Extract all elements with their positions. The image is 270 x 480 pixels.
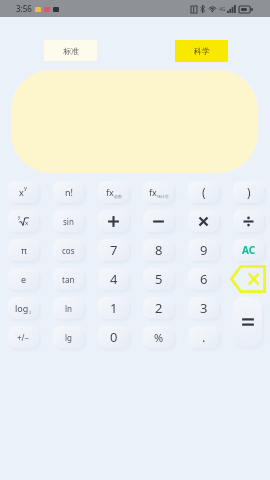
staticText: 4G xyxy=(219,6,226,13)
staticText: 5 xyxy=(155,270,163,288)
button[interactable] xyxy=(233,210,264,232)
staticText: 2 xyxy=(29,310,32,315)
staticText: ln xyxy=(65,303,73,314)
staticText: e xyxy=(21,273,27,285)
button[interactable]: 0 xyxy=(98,326,129,348)
staticText: 0 xyxy=(110,328,118,346)
staticText: 统计学 xyxy=(157,194,169,199)
staticText: sin xyxy=(63,216,74,227)
button[interactable]: fx xyxy=(98,181,129,203)
button[interactable]: ) xyxy=(233,181,264,203)
button[interactable]: n! xyxy=(53,181,84,203)
button[interactable]: y xyxy=(8,210,39,232)
button[interactable]: 7 xyxy=(98,239,129,261)
staticText: 9 xyxy=(200,241,208,259)
staticText: . xyxy=(202,328,206,346)
staticText: y xyxy=(18,214,21,220)
button[interactable]: 9 xyxy=(188,239,219,261)
staticText: π xyxy=(21,244,27,256)
button[interactable] xyxy=(233,297,262,347)
button[interactable]: 1 xyxy=(98,297,129,319)
staticText: lg xyxy=(65,332,72,343)
button[interactable]: x xyxy=(8,181,39,203)
button[interactable] xyxy=(188,210,219,232)
staticText: 8 xyxy=(155,241,163,259)
button[interactable]: 6 xyxy=(188,268,219,290)
staticText: 3 xyxy=(200,299,208,317)
button[interactable]: cos xyxy=(53,239,84,261)
button[interactable] xyxy=(143,210,174,232)
staticText: x xyxy=(19,186,24,198)
staticText: n! xyxy=(65,186,73,198)
button[interactable]: 3 xyxy=(188,297,219,319)
staticText: y xyxy=(24,184,28,192)
staticText: 科学 xyxy=(194,46,210,56)
button[interactable]: 标准 xyxy=(44,40,97,61)
button[interactable]: ( xyxy=(188,181,219,203)
staticText: 1 xyxy=(110,299,118,317)
button[interactable]: e xyxy=(8,268,39,290)
button[interactable]: 5 xyxy=(143,268,174,290)
staticText: % xyxy=(154,330,164,345)
button[interactable]: 科学 xyxy=(175,40,228,62)
button[interactable]: 8 xyxy=(143,239,174,261)
staticText: log xyxy=(15,302,29,314)
button[interactable]: tan xyxy=(53,268,84,290)
button[interactable]: Backspace xyxy=(230,265,266,293)
button[interactable]: . xyxy=(188,326,219,348)
staticText: 3:56 xyxy=(16,3,32,14)
button[interactable]: fx xyxy=(143,181,174,203)
staticText: ) xyxy=(247,184,251,200)
staticText: cos xyxy=(62,245,75,256)
staticText: +/− xyxy=(17,332,30,343)
button[interactable] xyxy=(98,210,129,232)
button[interactable]: +/− xyxy=(8,326,39,348)
button[interactable]: 2 xyxy=(143,297,174,319)
staticText: 6 xyxy=(200,270,208,288)
button[interactable]: 4 xyxy=(98,268,129,290)
staticText: fx xyxy=(106,186,114,198)
button[interactable]: π xyxy=(8,239,39,261)
staticText: x xyxy=(25,219,29,227)
staticText: AC xyxy=(242,243,256,257)
button[interactable]: lg xyxy=(53,326,84,348)
button[interactable]: sin xyxy=(53,210,84,232)
staticText: 4 xyxy=(110,270,118,288)
staticText: 标准 xyxy=(63,46,79,56)
staticText: 函数 xyxy=(114,194,122,199)
staticText: 7 xyxy=(110,241,118,259)
button[interactable]: log xyxy=(8,297,39,319)
staticText: 2 xyxy=(155,299,163,317)
staticText: tan xyxy=(62,274,75,285)
button[interactable]: ln xyxy=(53,297,84,319)
staticText: ( xyxy=(202,184,206,200)
button[interactable]: % xyxy=(143,326,174,348)
staticText: fx xyxy=(149,186,157,198)
button[interactable]: AC xyxy=(233,239,264,261)
